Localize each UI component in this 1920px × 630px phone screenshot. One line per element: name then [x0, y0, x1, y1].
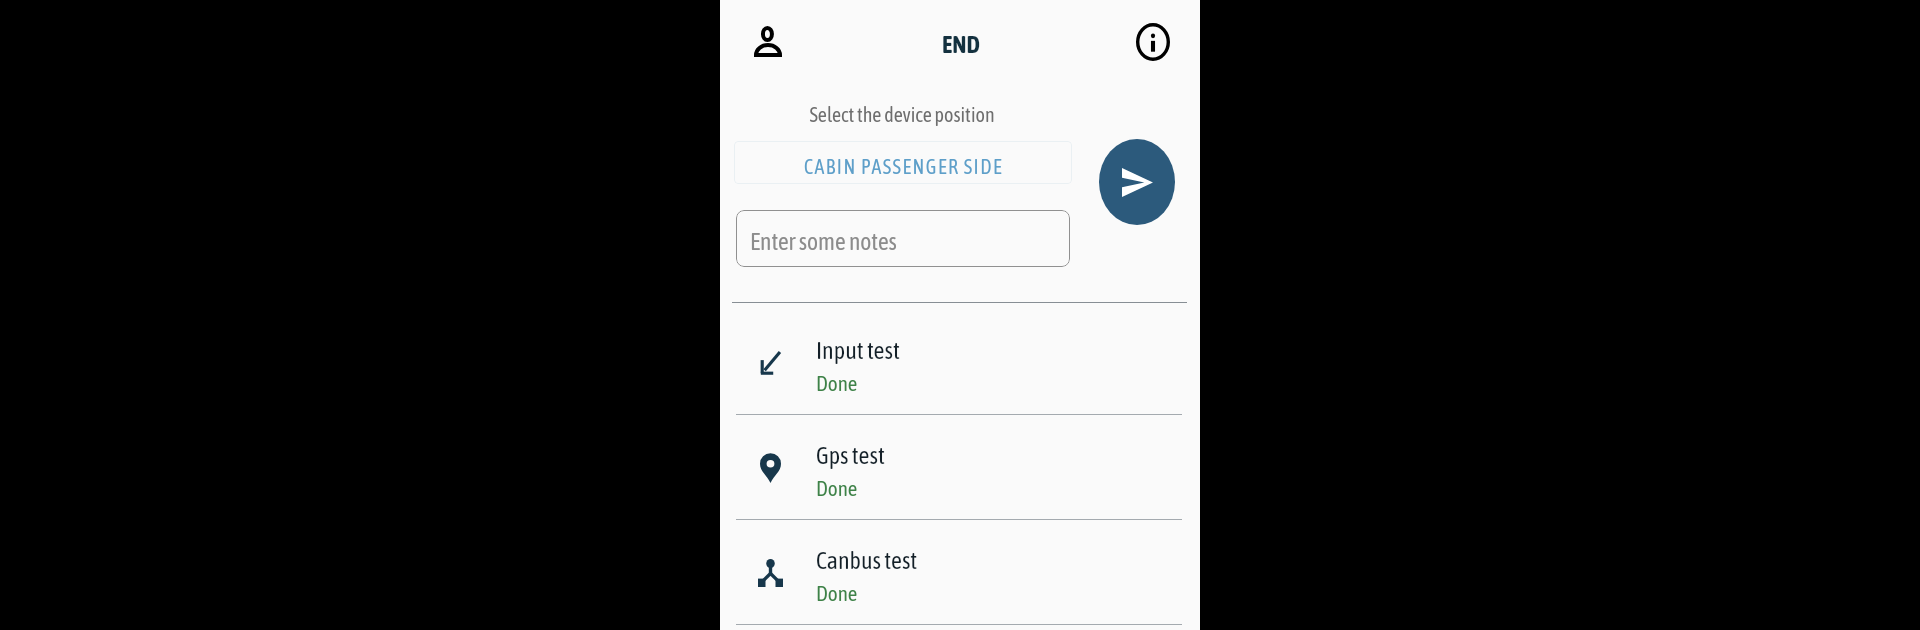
button[interactable]: Canbus test — [720, 520, 1200, 625]
button[interactable]: Send — [1099, 139, 1175, 225]
button[interactable]: Info — [1130, 19, 1176, 65]
staticText: Done — [816, 371, 858, 395]
staticText: Done — [816, 581, 858, 605]
staticText: Enter some notes — [750, 228, 897, 255]
staticText: Input test — [816, 337, 900, 365]
button[interactable]: CABIN PASSENGER SIDE — [734, 141, 1072, 184]
staticText: Done — [816, 476, 858, 500]
button[interactable]: Gps test — [720, 415, 1200, 520]
button[interactable]: Enter some notes — [736, 210, 1070, 267]
staticText: Canbus test — [816, 547, 918, 575]
button[interactable]: Account — [745, 19, 790, 64]
button[interactable]: Input test — [720, 310, 1200, 415]
staticText: END — [942, 31, 980, 59]
staticText: CABIN PASSENGER SIDE — [804, 155, 1003, 178]
staticText: Gps test — [816, 442, 885, 470]
staticText: Select the device position — [720, 103, 1084, 126]
